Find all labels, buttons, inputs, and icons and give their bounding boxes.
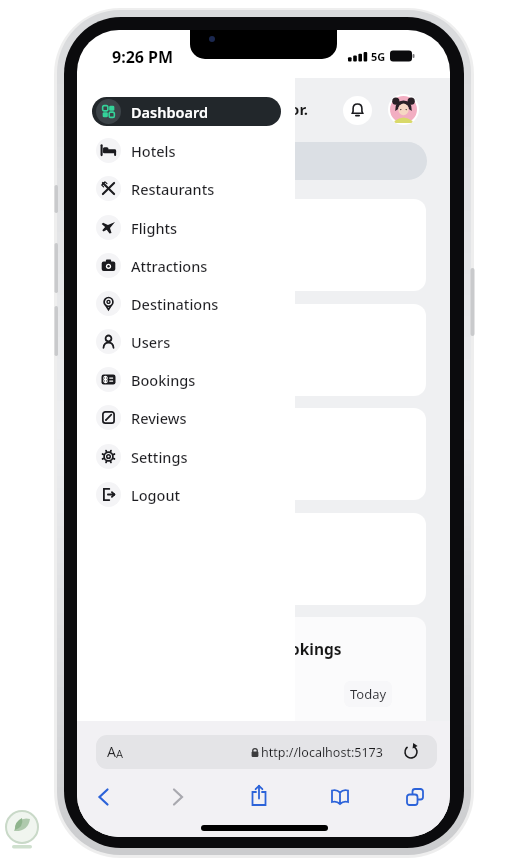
staticText: Settings [131, 447, 188, 467]
staticText: Logout [131, 485, 181, 505]
button[interactable] [343, 96, 372, 125]
staticText: Reviews [131, 408, 187, 428]
button[interactable] [327, 783, 355, 811]
button[interactable]: Attractions [77, 246, 295, 284]
staticText: 5G [371, 49, 386, 64]
staticText: Flights [131, 218, 178, 238]
staticText: http://localhost:5173 [261, 744, 383, 761]
button[interactable]: Bookings [77, 360, 295, 398]
button[interactable]: Restaurants [77, 169, 295, 207]
button[interactable]: Destinations [77, 284, 295, 322]
button[interactable]: Dashboard [92, 97, 281, 126]
staticText: Today [350, 685, 387, 703]
button[interactable] [99, 304, 426, 396]
staticText: Users [131, 332, 171, 352]
button[interactable]: Hotels [77, 131, 295, 169]
staticText: A [107, 742, 116, 761]
button[interactable] [99, 142, 427, 180]
staticText: 9:26 PM [112, 46, 174, 68]
staticText: Dashboard [131, 102, 209, 122]
button[interactable] [96, 735, 437, 769]
button[interactable] [401, 783, 429, 811]
staticText: Attractions [131, 256, 208, 276]
button[interactable] [99, 408, 426, 500]
button[interactable] [90, 783, 118, 811]
button[interactable]: Flights [77, 208, 295, 246]
button[interactable]: Logout [77, 475, 295, 513]
staticText: or. [290, 99, 308, 119]
staticText: A [116, 746, 124, 761]
button[interactable]: Settings [77, 437, 295, 475]
staticText: Destinations [131, 294, 219, 314]
staticText: Bookings [131, 370, 196, 390]
button[interactable] [245, 783, 273, 811]
staticText: okings [290, 638, 342, 659]
button[interactable]: Users [77, 322, 295, 360]
staticText: Hotels [131, 141, 176, 161]
staticText: Restaurants [131, 179, 215, 199]
button[interactable] [165, 783, 193, 811]
button[interactable] [99, 199, 426, 291]
button[interactable] [388, 94, 419, 125]
button[interactable]: Reviews [77, 398, 295, 436]
button[interactable]: Today [344, 681, 392, 707]
